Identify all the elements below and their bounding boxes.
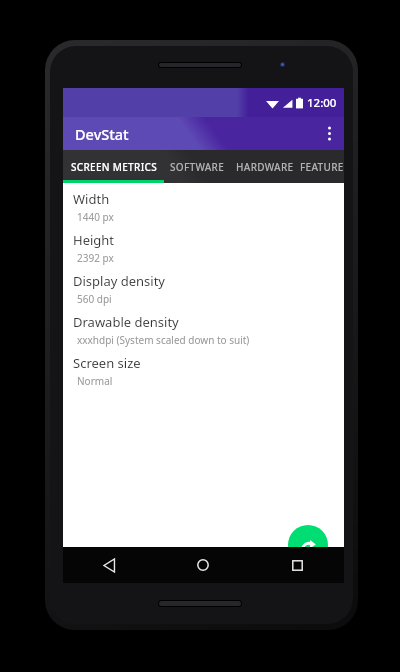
button[interactable]: Share bbox=[288, 525, 328, 565]
button[interactable]: Height bbox=[63, 227, 344, 268]
staticText: 1440 px bbox=[77, 210, 114, 224]
staticText: 12:00 bbox=[307, 95, 337, 111]
staticText: SOFTWARE bbox=[170, 160, 225, 174]
button[interactable]: Width bbox=[63, 186, 344, 227]
staticText: Display density bbox=[73, 272, 165, 290]
staticText: HARDWARE bbox=[236, 160, 294, 174]
button[interactable]: Home bbox=[156, 547, 250, 583]
staticText: Drawable density bbox=[73, 313, 179, 331]
staticText: Width bbox=[73, 190, 110, 208]
button[interactable]: Recent apps bbox=[250, 547, 344, 583]
staticText: Normal bbox=[77, 374, 113, 388]
staticText: 560 dpi bbox=[77, 292, 112, 306]
staticText: Screen size bbox=[73, 354, 141, 372]
button[interactable]: FEATURES bbox=[300, 150, 344, 183]
button[interactable]: Screen size bbox=[63, 350, 344, 391]
staticText: DevStat bbox=[75, 124, 129, 144]
staticText: Height bbox=[73, 231, 115, 249]
button[interactable]: Back bbox=[63, 547, 156, 583]
button[interactable]: Display density bbox=[63, 268, 344, 309]
button[interactable]: SOFTWARE bbox=[164, 150, 230, 183]
staticText: 2392 px bbox=[77, 251, 114, 265]
staticText: xxxhdpi (System scaled down to suit) bbox=[77, 333, 250, 347]
button[interactable]: More options bbox=[314, 117, 344, 150]
button[interactable]: HARDWARE bbox=[230, 150, 300, 183]
button[interactable]: Drawable density bbox=[63, 309, 344, 350]
button[interactable]: SCREEN METRICS bbox=[63, 150, 164, 183]
staticText: SCREEN METRICS bbox=[71, 160, 157, 174]
staticText: FEATURES bbox=[300, 160, 344, 174]
